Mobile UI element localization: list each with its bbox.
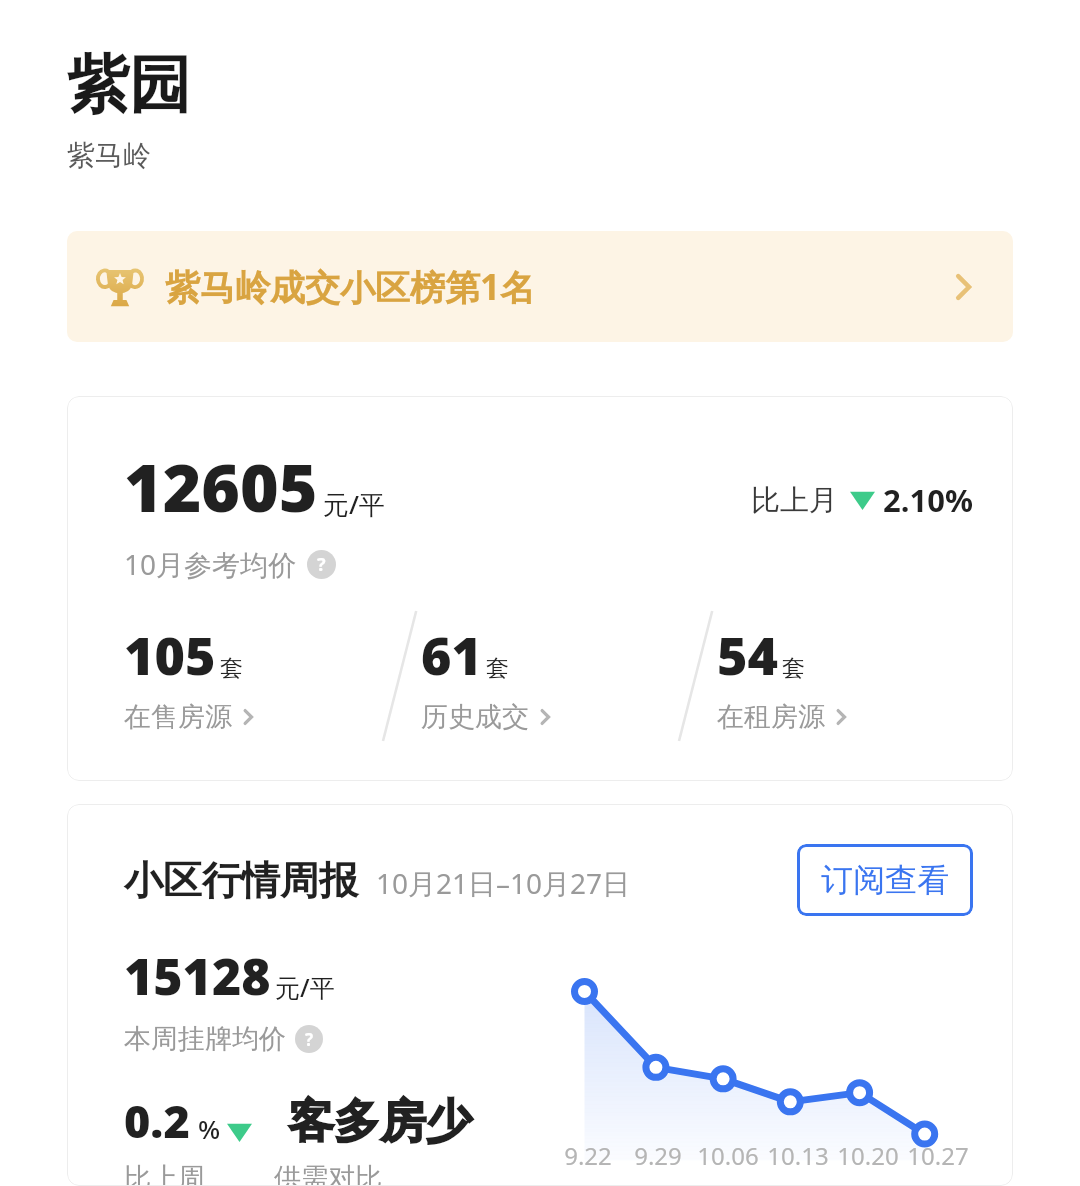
button[interactable]: 105 [124,619,381,734]
staticText: 小区行情周报 [124,856,358,905]
button[interactable]: 54 [717,619,973,734]
staticText: 元/平 [275,970,335,1004]
staticText: 本周挂牌均价 [124,1022,286,1056]
staticText: 订阅查看 [821,860,949,900]
staticText: 54 [717,619,778,690]
staticText: 10.20 [833,1139,903,1172]
button[interactable]: 61 [421,619,677,734]
staticText: 历史成交 [421,700,529,734]
button[interactable]: 说明 [307,550,336,579]
staticText: % [198,1111,221,1146]
staticText: ? [305,1028,314,1051]
staticText: 105 [124,619,216,690]
staticText: 10月参考均价 [124,545,297,583]
staticText: 10.27 [903,1139,973,1172]
staticText: 9.29 [623,1139,693,1172]
staticText: 在售房源 [124,700,232,734]
staticText: 10月21日–10月27日 [376,864,631,902]
button[interactable]: 订阅查看 [797,844,973,916]
staticText: 15128 [124,942,271,1010]
staticText: 套 [782,654,805,683]
staticText: 紫马岭 [67,138,151,173]
staticText: 套 [486,654,509,683]
staticText: 紫园 [67,46,191,124]
staticText: 供需对比 [274,1161,382,1186]
staticText: 元/平 [323,486,386,522]
staticText: 0.2 [124,1090,190,1151]
staticText: 比上周 [124,1161,274,1186]
staticText: 套 [220,654,243,683]
staticText: 10.06 [693,1139,763,1172]
staticText: ? [317,552,326,577]
staticText: 12605 [124,441,318,531]
staticText: 61 [421,619,482,690]
staticText: 2.10% [883,479,973,521]
staticText: 10.13 [763,1139,833,1172]
staticText: 在租房源 [717,700,825,734]
button[interactable]: 说明 [295,1025,323,1053]
staticText: 比上月 [751,482,838,519]
button[interactable]: 紫马岭成交小区榜第1名 [67,231,1013,342]
staticText: 紫马岭成交小区榜第1名 [165,263,536,311]
staticText: 客多房少 [288,1093,472,1151]
staticText: 9.22 [553,1139,623,1172]
